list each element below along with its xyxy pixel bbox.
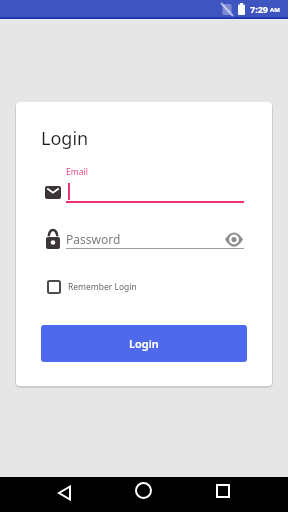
- staticText: Login: [41, 126, 89, 151]
- button[interactable]: Remember Login: [41, 280, 137, 294]
- staticText: 7:29: [250, 3, 268, 15]
- button[interactable]: [119, 477, 167, 512]
- staticText: Email: [66, 166, 88, 178]
- button[interactable]: [40, 477, 88, 512]
- staticText: Password: [66, 231, 121, 247]
- button[interactable]: [199, 477, 247, 512]
- staticText: AM: [270, 6, 280, 14]
- staticText: Login: [129, 336, 159, 351]
- staticText: Remember Login: [68, 281, 137, 293]
- button[interactable]: Login: [41, 325, 247, 362]
